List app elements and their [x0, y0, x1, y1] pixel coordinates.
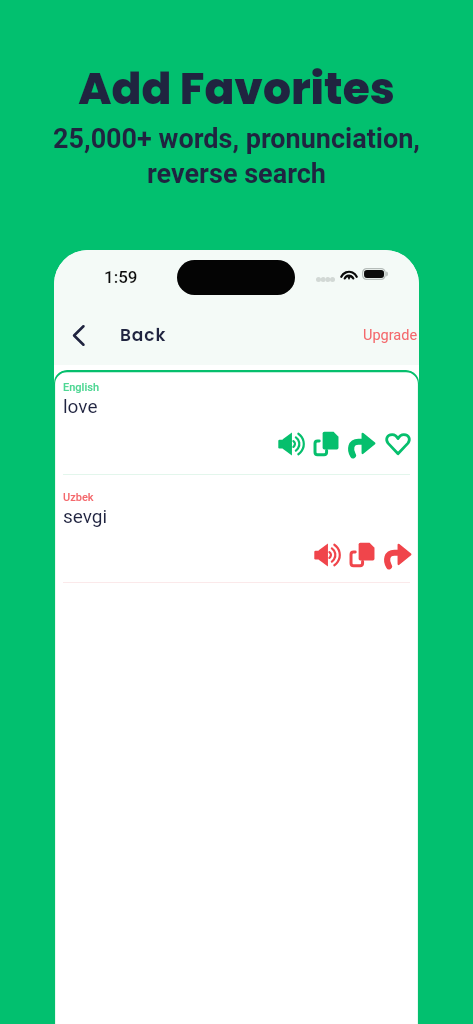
- button[interactable]: Listen: [272, 426, 308, 462]
- staticText: love: [63, 395, 98, 417]
- staticText: Upgrade: [363, 327, 418, 344]
- staticText: Back: [120, 323, 167, 347]
- button[interactable]: Share: [380, 537, 416, 573]
- staticText: 1:59: [104, 267, 138, 287]
- staticText: Add Favorites: [78, 58, 395, 120]
- staticText: sevgi: [63, 505, 108, 527]
- button[interactable]: Add to favorites: [380, 426, 416, 462]
- staticText: English: [63, 381, 99, 394]
- button[interactable]: Back: [54, 316, 177, 354]
- staticText: 25,000+ words, pronunciation, reverse se…: [53, 123, 420, 189]
- button[interactable]: Copy: [308, 426, 344, 462]
- button[interactable]: Share: [344, 426, 380, 462]
- button[interactable]: Upgrade: [351, 319, 419, 352]
- button[interactable]: Copy: [344, 537, 380, 573]
- staticText: Uzbek: [63, 491, 94, 504]
- button[interactable]: Listen: [308, 537, 344, 573]
